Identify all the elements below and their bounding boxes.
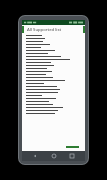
button[interactable] [26, 76, 82, 79]
button[interactable] [26, 34, 82, 37]
button[interactable] [26, 67, 82, 70]
button[interactable] [26, 79, 82, 82]
button[interactable] [26, 46, 82, 49]
button[interactable] [26, 94, 82, 97]
button[interactable] [26, 106, 82, 109]
button[interactable]: Cancel [64, 145, 81, 149]
button[interactable]: Back [30, 151, 40, 161]
button[interactable] [26, 43, 82, 46]
button[interactable] [26, 112, 82, 115]
button[interactable] [26, 52, 82, 55]
button[interactable]: Recents [67, 151, 77, 161]
button[interactable] [26, 82, 82, 85]
button[interactable] [26, 100, 82, 103]
button[interactable] [26, 58, 82, 61]
button[interactable] [26, 103, 82, 106]
button[interactable] [26, 73, 82, 76]
button[interactable] [26, 70, 82, 73]
button[interactable] [26, 61, 82, 64]
button[interactable]: Home [49, 151, 59, 161]
button[interactable] [26, 64, 82, 67]
button[interactable] [26, 55, 82, 58]
button[interactable] [26, 109, 82, 112]
button[interactable] [26, 88, 82, 91]
button[interactable] [26, 49, 82, 52]
button[interactable] [26, 37, 82, 40]
button[interactable] [26, 85, 82, 88]
button[interactable] [26, 40, 82, 43]
button[interactable] [26, 91, 82, 94]
staticText: All Supported list [27, 27, 62, 33]
button[interactable] [26, 97, 82, 100]
